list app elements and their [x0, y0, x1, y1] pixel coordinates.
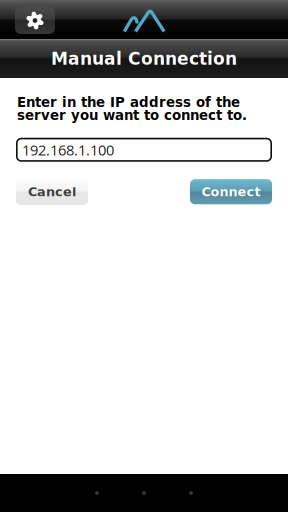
button[interactable]: Settings [15, 7, 55, 34]
staticText: Manual Connection [51, 49, 237, 69]
button[interactable]: Cancel [16, 179, 88, 205]
staticText: 192.168.1.100 [22, 140, 114, 160]
staticText: Cancel [28, 184, 76, 199]
staticText: Enter in the IP address of the server yo… [17, 96, 247, 122]
staticText: Connect [201, 184, 260, 199]
button[interactable]: Connect [190, 179, 272, 204]
